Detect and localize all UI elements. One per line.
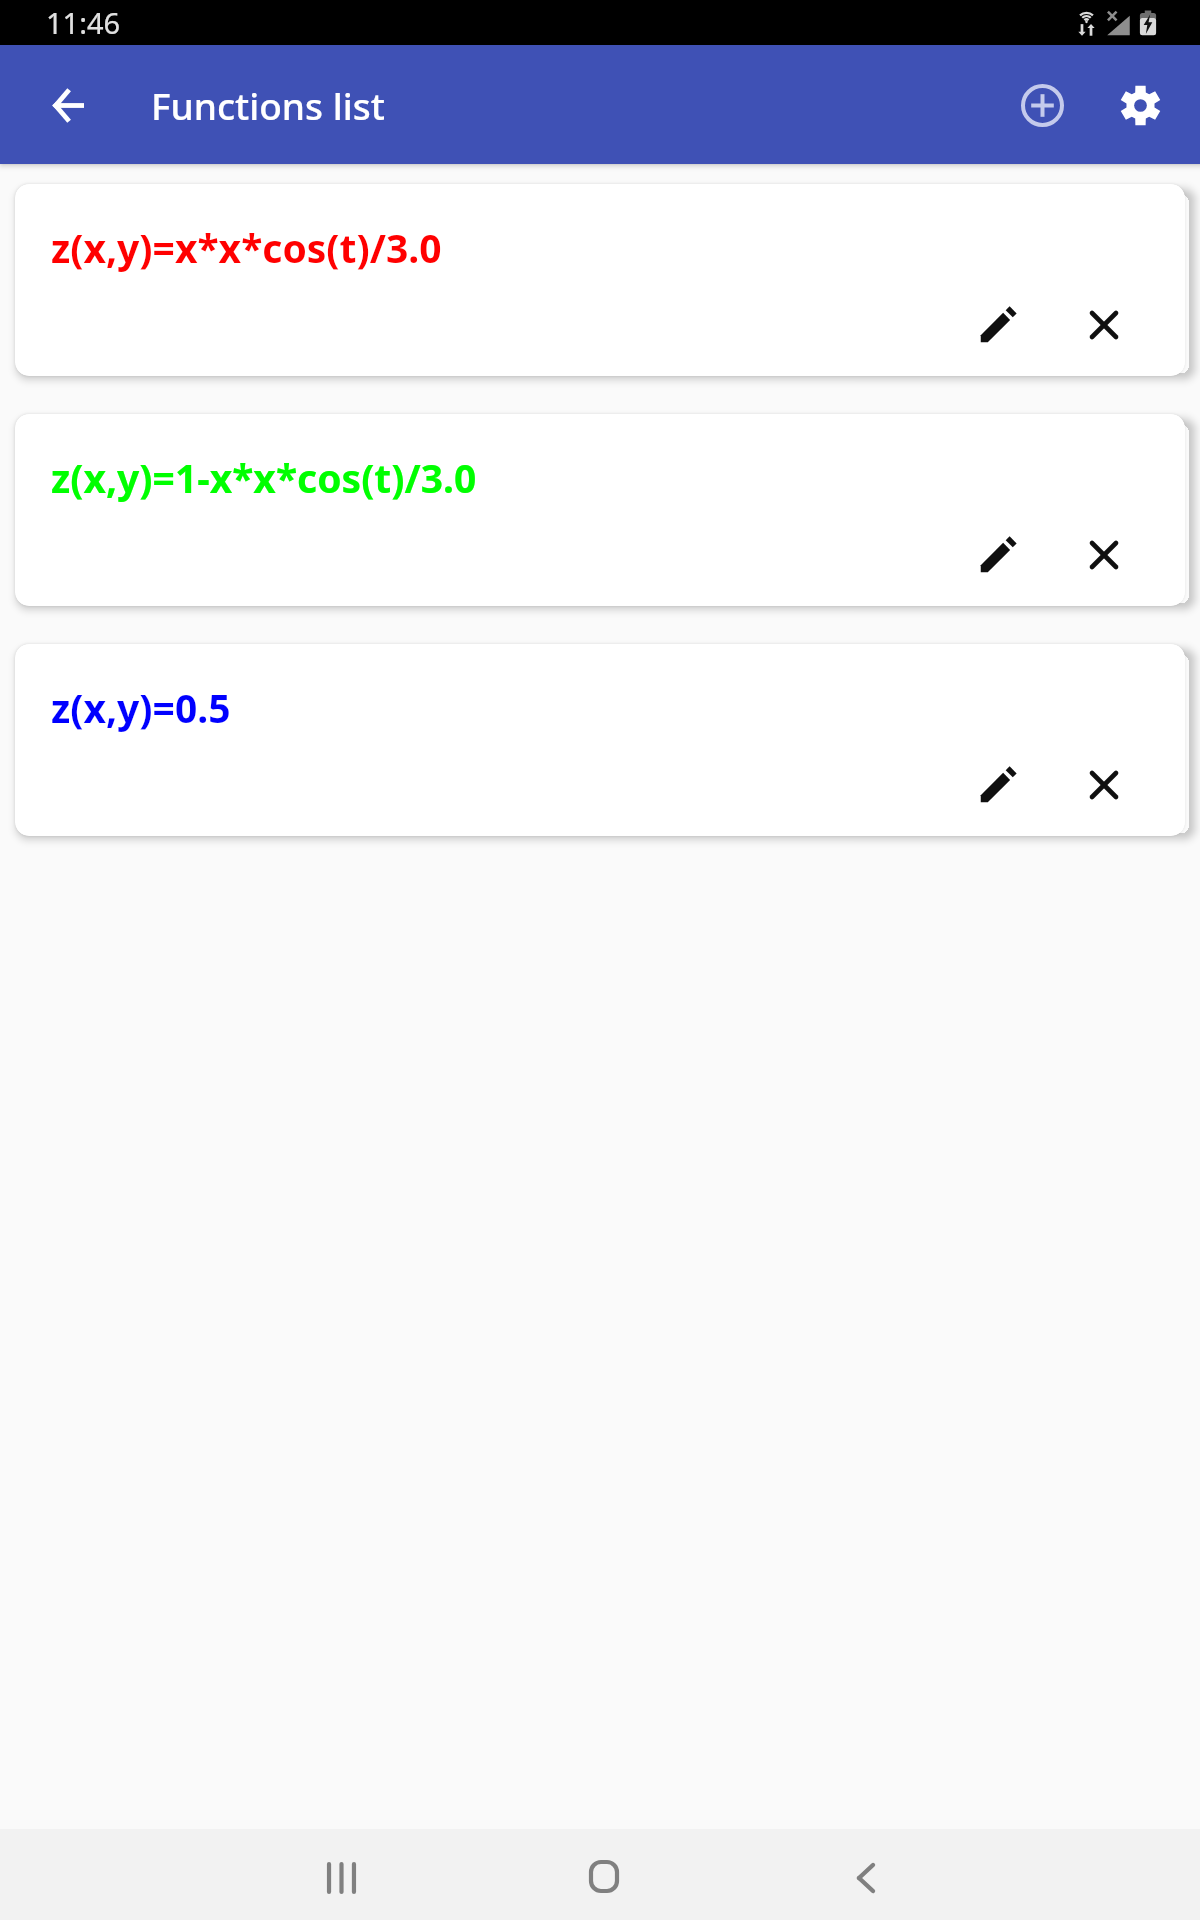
button[interactable]: Back: [818, 1832, 914, 1920]
button[interactable]: Back: [28, 65, 108, 145]
button[interactable]: Recents: [293, 1832, 389, 1920]
button[interactable]: Add: [1008, 61, 1096, 149]
button[interactable]: Edit: [963, 289, 1033, 359]
button[interactable]: z(x,y)=1-x*x*cos(t)/3.0: [15, 414, 1185, 606]
button[interactable]: Edit: [963, 749, 1033, 819]
button[interactable]: z(x,y)=0.5: [15, 644, 1185, 836]
button[interactable]: Delete: [1068, 289, 1138, 359]
staticText: z(x,y)=x*x*cos(t)/3.0: [51, 221, 442, 274]
button[interactable]: Home: [556, 1831, 652, 1920]
button[interactable]: Settings: [1096, 61, 1184, 149]
staticText: 11:46: [46, 3, 121, 42]
button[interactable]: z(x,y)=x*x*cos(t)/3.0: [15, 184, 1185, 376]
button[interactable]: Delete: [1068, 519, 1138, 589]
button[interactable]: Edit: [963, 519, 1033, 589]
button[interactable]: Delete: [1068, 749, 1138, 819]
staticText: Functions list: [151, 80, 385, 130]
staticText: z(x,y)=0.5: [51, 681, 231, 734]
staticText: z(x,y)=1-x*x*cos(t)/3.0: [51, 451, 477, 504]
